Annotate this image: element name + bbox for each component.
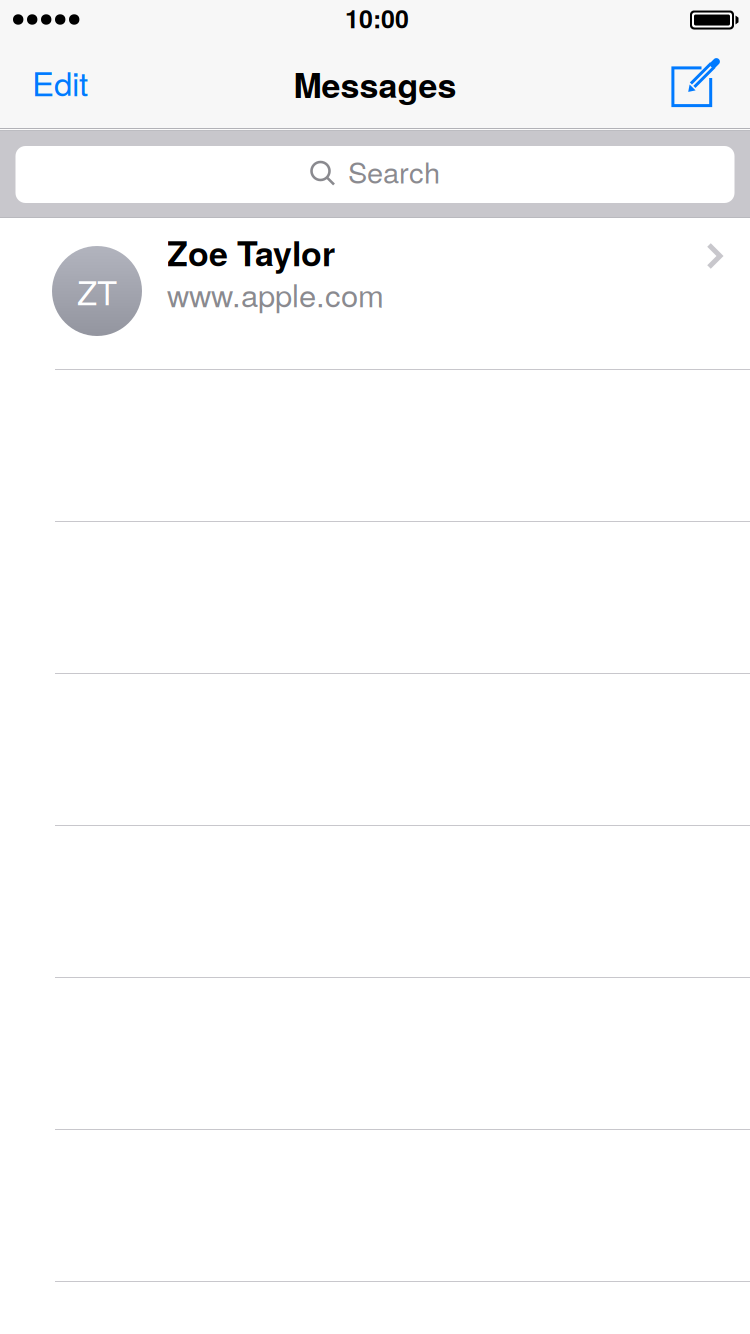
staticText: Edit: [32, 58, 88, 106]
button[interactable]: ZT: [0, 218, 750, 369]
staticText: Zoe Taylor: [167, 228, 335, 277]
button[interactable]: Edit: [15, 38, 105, 126]
staticText: ZT: [77, 267, 117, 315]
staticText: 10:00: [345, 0, 409, 36]
button[interactable]: Search: [0, 128, 750, 217]
button[interactable]: Compose: [657, 39, 737, 127]
staticText: Search: [348, 150, 440, 192]
staticText: www.apple.com: [167, 272, 384, 316]
staticText: Messages: [293, 60, 456, 108]
